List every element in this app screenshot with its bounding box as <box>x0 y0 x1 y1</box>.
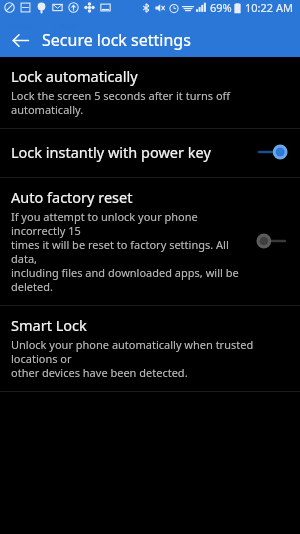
staticText: Secure lock settings <box>42 29 191 51</box>
button[interactable]: Lock automatically <box>0 57 300 128</box>
staticText: Auto factory reset <box>11 187 133 207</box>
staticText: If you attempt to unlock your phone inco… <box>11 209 246 294</box>
staticText: Unlock your phone automatically when tru… <box>11 337 292 380</box>
staticText: 10:22 AM <box>245 0 293 15</box>
button[interactable]: Navigate up <box>4 24 36 56</box>
staticText: 69% <box>210 0 232 15</box>
staticText: Lock instantly with power key <box>11 142 211 162</box>
staticText: Lock automatically <box>11 66 138 86</box>
button[interactable]: Auto factory reset <box>0 178 300 305</box>
button[interactable]: Auto factory reset switch <box>252 227 292 255</box>
staticText: Smart Lock <box>11 315 87 335</box>
button[interactable]: Lock instantly with power key <box>0 129 300 177</box>
button[interactable]: Lock instantly with power key switch <box>252 138 292 166</box>
staticText: Lock the screen 5 seconds after it turns… <box>11 88 231 117</box>
button[interactable]: Smart Lock <box>0 306 300 391</box>
